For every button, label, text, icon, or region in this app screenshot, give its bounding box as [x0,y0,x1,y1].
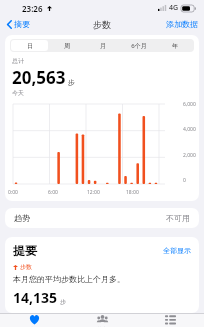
staticText: 总计 [12,57,24,65]
staticText: 0 [183,177,186,184]
button[interactable]: 添加数据 [166,19,204,29]
staticText: 不可用 [166,213,190,223]
staticText: 本月您的平均步数比上个月多。 [13,274,125,284]
staticText: 4G [169,3,179,13]
staticText: 20,563 [12,66,66,89]
button[interactable]: 共享 [68,314,136,327]
staticText: 6个月 [131,42,147,50]
button[interactable]: 月 [85,40,121,51]
staticText: 步 [60,298,66,306]
staticText: 步数 [20,263,32,271]
button[interactable]: 摘要 [5,19,32,29]
button[interactable]: 全部显示 [163,246,191,255]
staticText: 0:00 [8,189,18,196]
button[interactable]: 浏览 [136,314,204,327]
staticText: 年 [172,42,178,50]
staticText: 共享 [97,326,107,327]
button[interactable]: 趋势 [5,208,199,228]
button[interactable]: 周 [48,40,85,51]
staticText: 18:00 [126,189,139,196]
staticText: 2,000 [183,152,196,159]
staticText: 步 [68,78,75,87]
staticText: 步数 [93,19,111,30]
button[interactable]: 日 [11,40,48,51]
staticText: 6,000 [183,101,196,108]
staticText: 4,000 [183,126,196,133]
staticText: 23:26 [22,3,43,14]
staticText: 趋势 [14,213,30,223]
staticText: 日 [27,42,33,50]
button[interactable]: 年 [157,40,193,51]
staticText: 6:00 [48,189,58,196]
staticText: 12:00 [87,189,100,196]
staticText: 周 [64,42,70,50]
button[interactable]: 摘要 [0,314,68,327]
staticText: 提要 [13,243,37,258]
button[interactable]: 6个月 [121,40,157,51]
staticText: 摘要 [14,19,30,29]
staticText: 今天 [12,89,24,97]
staticText: 月 [100,42,106,50]
staticText: 14,135 [13,288,58,307]
